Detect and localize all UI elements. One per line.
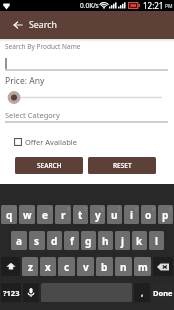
staticText: Select Category: [5, 110, 60, 120]
button[interactable]: z: [22, 257, 38, 276]
button[interactable]: Offer Available: [14, 137, 77, 147]
staticText: h: [102, 234, 109, 248]
staticText: d: [51, 234, 58, 248]
staticText: 2: [31, 206, 34, 212]
staticText: SEARCH: [37, 161, 62, 170]
staticText: 6: [101, 206, 104, 212]
staticText: q: [6, 208, 13, 222]
button[interactable]: r: [55, 205, 71, 224]
staticText: a: [16, 234, 22, 248]
button[interactable]: j: [115, 231, 130, 250]
staticText: p: [162, 208, 169, 222]
staticText: e: [42, 208, 48, 222]
staticText: ?123: [3, 288, 20, 298]
button[interactable]: Price slider: [0, 90, 174, 105]
button[interactable]: SEARCH: [15, 157, 83, 174]
staticText: w: [23, 208, 32, 222]
button[interactable]: l: [149, 231, 164, 250]
button[interactable]: k: [132, 231, 147, 250]
staticText: v: [83, 260, 89, 274]
staticText: z: [28, 260, 33, 274]
staticText: k: [136, 234, 143, 248]
staticText: i: [130, 208, 133, 222]
staticText: 1: [13, 206, 16, 212]
staticText: 8: [135, 206, 138, 212]
button[interactable]: f: [64, 231, 79, 250]
staticText: n: [120, 260, 127, 274]
staticText: g: [85, 234, 92, 248]
staticText: 12:21: [143, 0, 164, 11]
button[interactable]: ,: [134, 283, 150, 302]
staticText: 5: [84, 206, 87, 212]
staticText: 7: [118, 206, 121, 212]
button[interactable]: u: [107, 205, 122, 224]
button[interactable]: v: [77, 257, 94, 276]
staticText: m: [138, 260, 148, 274]
button[interactable]: x: [40, 257, 56, 276]
button[interactable]: m: [134, 257, 151, 276]
button[interactable]: w: [19, 205, 35, 224]
button[interactable]: RESET: [88, 157, 156, 174]
button[interactable]: t: [73, 205, 88, 224]
button[interactable]: Shift: [1, 257, 20, 276]
staticText: Offer Available: [25, 137, 77, 147]
button[interactable]: c: [58, 257, 75, 276]
button[interactable]: Navigate up: [3, 11, 32, 39]
button[interactable]: Done: [152, 283, 173, 302]
staticText: PM: [165, 3, 173, 10]
staticText: b: [101, 260, 108, 274]
staticText: RESET: [113, 161, 132, 170]
staticText: 0: [169, 206, 172, 212]
staticText: y: [95, 208, 101, 222]
button[interactable]: q: [1, 205, 17, 224]
button[interactable]: Voice input: [23, 283, 39, 302]
staticText: x: [45, 260, 51, 274]
staticText: s: [34, 234, 40, 248]
staticText: 3: [49, 206, 52, 212]
staticText: Search By Product Name: [5, 42, 81, 51]
button[interactable]: s: [29, 231, 45, 250]
staticText: t: [78, 208, 83, 222]
staticText: 9: [152, 206, 155, 212]
button[interactable]: y: [90, 205, 105, 224]
button[interactable]: d: [47, 231, 62, 250]
staticText: o: [145, 208, 152, 222]
button[interactable]: ?123: [1, 283, 21, 302]
button[interactable]: o: [141, 205, 156, 224]
staticText: j: [121, 234, 124, 248]
button[interactable]: p: [158, 205, 173, 224]
staticText: c: [64, 260, 70, 274]
staticText: 0.0K/s: [80, 1, 99, 10]
staticText: ,: [141, 287, 144, 298]
button[interactable]: a: [11, 231, 27, 250]
staticText: l: [155, 234, 158, 248]
staticText: Done: [153, 288, 173, 298]
button[interactable]: i: [124, 205, 139, 224]
staticText: Search: [29, 19, 57, 31]
staticText: 4: [67, 206, 70, 212]
button[interactable]: h: [98, 231, 113, 250]
button[interactable]: b: [96, 257, 113, 276]
staticText: Price: Any: [5, 75, 45, 87]
button[interactable]: n: [115, 257, 132, 276]
staticText: u: [111, 208, 118, 222]
staticText: f: [70, 234, 74, 248]
button[interactable]: Backspace: [153, 257, 173, 276]
button[interactable]: e: [37, 205, 53, 224]
button[interactable]: g: [81, 231, 96, 250]
staticText: r: [61, 208, 66, 222]
